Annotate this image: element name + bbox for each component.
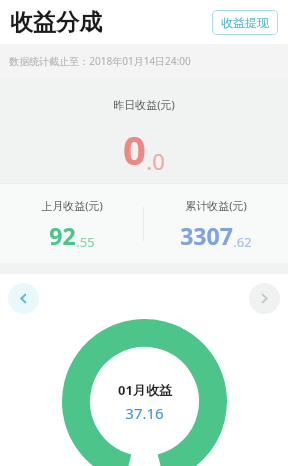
staticText: 37.16 — [125, 403, 164, 423]
button[interactable]: 收益提现 — [212, 10, 278, 35]
button[interactable]: Next month — [249, 283, 280, 314]
button[interactable]: 上月收益(元) — [0, 184, 143, 263]
button[interactable]: 累计收益(元) — [144, 184, 288, 263]
staticText: 3307 — [180, 220, 233, 251]
button[interactable]: Previous month — [8, 283, 39, 314]
staticText: 收益提现 — [221, 15, 269, 30]
staticText: .0 — [146, 146, 165, 176]
staticText: 昨日收益(元) — [113, 97, 175, 112]
staticText: .55 — [76, 233, 95, 251]
staticText: 上月收益(元) — [41, 198, 103, 213]
staticText: .62 — [233, 233, 252, 251]
staticText: 收益分成 — [10, 8, 102, 37]
staticText: 累计收益(元) — [185, 198, 247, 213]
button[interactable]: 01月收益 — [62, 319, 227, 466]
staticText: 数据统计截止至：2018年01月14日24:00 — [9, 54, 191, 68]
staticText: 01月收益 — [118, 381, 172, 399]
staticText: 0 — [123, 122, 146, 176]
staticText: 92 — [49, 220, 76, 251]
